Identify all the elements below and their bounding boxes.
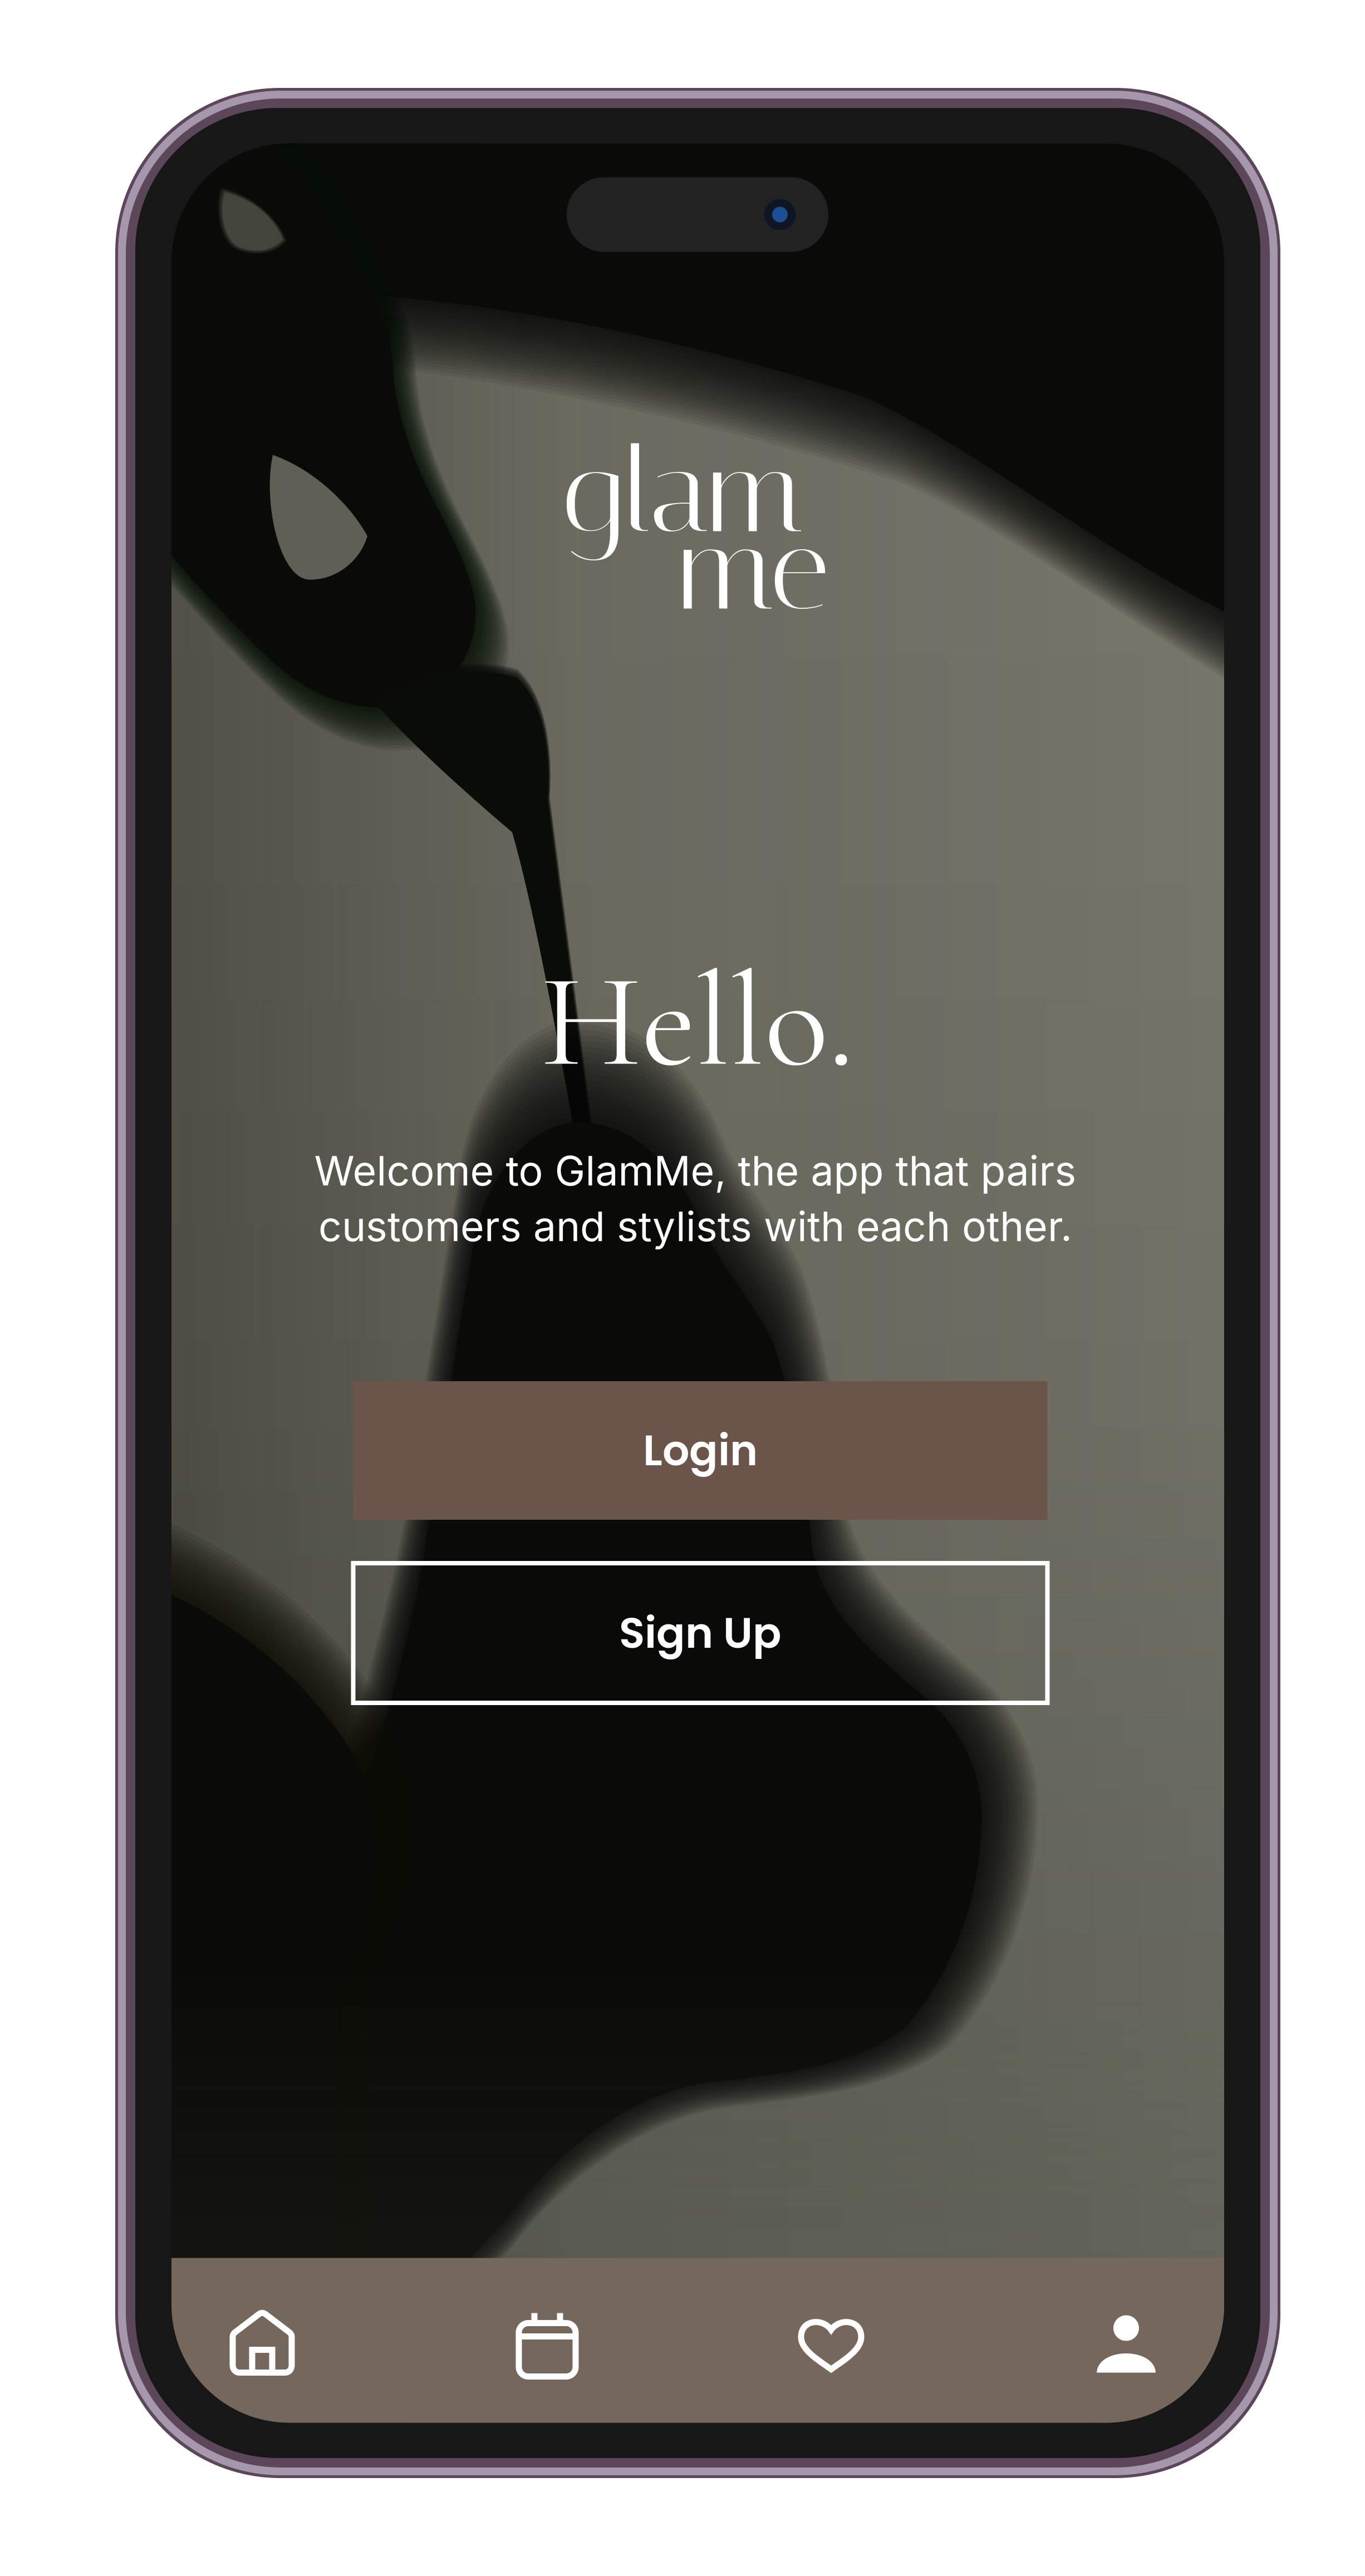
button[interactable]: Profile — [1004, 2261, 1249, 2426]
button[interactable]: Login — [353, 1381, 1047, 1520]
staticText: customers and stylists with each other. — [318, 1202, 1072, 1251]
staticText: Hello. — [541, 941, 854, 1102]
staticText: glam — [563, 422, 802, 560]
button[interactable]: Home — [140, 2261, 385, 2426]
staticText: Sign Up — [619, 1603, 782, 1663]
staticText: me — [679, 499, 829, 638]
staticText: Login — [643, 1421, 758, 1480]
button[interactable]: Favourites — [709, 2261, 954, 2426]
staticText: Welcome to GlamMe, the app that pairs — [314, 1146, 1076, 1195]
button[interactable]: Sign Up — [353, 1563, 1047, 1703]
button[interactable]: Bookings — [425, 2261, 670, 2426]
